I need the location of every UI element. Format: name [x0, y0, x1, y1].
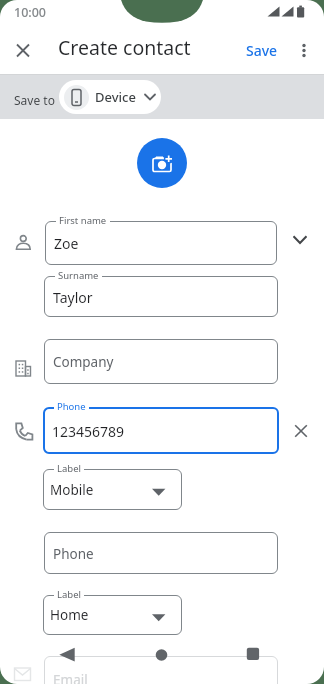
button[interactable] — [292, 38, 316, 62]
staticText: Zoe — [54, 234, 79, 253]
button[interactable] — [55, 643, 81, 665]
button[interactable]: Save — [238, 38, 286, 63]
button[interactable]: Device — [59, 80, 161, 114]
staticText: Home — [50, 606, 89, 624]
staticText: 123456789 — [52, 422, 125, 441]
staticText: Mobile — [50, 481, 94, 499]
staticText: Save to — [14, 92, 55, 108]
staticText: Label — [57, 588, 81, 601]
button[interactable] — [137, 138, 187, 188]
button[interactable] — [44, 339, 278, 384]
button[interactable] — [241, 641, 265, 665]
staticText: Email — [53, 671, 88, 684]
button[interactable] — [45, 221, 277, 265]
button[interactable] — [43, 469, 182, 510]
staticText: Save — [246, 41, 278, 60]
staticText: Phone — [53, 545, 94, 563]
staticText: Device — [95, 88, 136, 106]
button[interactable] — [289, 419, 313, 443]
staticText: Company — [53, 353, 114, 371]
button[interactable] — [288, 228, 312, 252]
staticText: First name — [59, 214, 107, 227]
staticText: Label — [57, 462, 81, 475]
button[interactable] — [150, 643, 174, 667]
staticText: 10:00 — [14, 4, 47, 21]
staticText: Surname — [58, 269, 99, 282]
button[interactable] — [43, 595, 182, 635]
staticText: Create contact — [58, 34, 191, 61]
button[interactable] — [44, 276, 278, 317]
button[interactable] — [44, 532, 278, 574]
button[interactable] — [43, 407, 279, 454]
staticText: Phone — [57, 400, 86, 413]
button[interactable] — [44, 656, 278, 684]
button[interactable] — [11, 38, 35, 62]
staticText: Taylor — [53, 288, 93, 307]
